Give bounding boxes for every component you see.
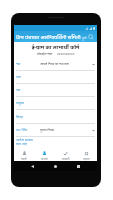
button[interactable]: जिल्हा: [14, 110, 97, 124]
staticText: नोंदणी: [21, 157, 27, 160]
staticText: गाव: [16, 88, 21, 92]
button[interactable]: Back: [28, 162, 37, 171]
button[interactable]: ग्राम पंचायत आरोग्यवर्धिनी समिती: [14, 31, 97, 42]
staticText: तुमचा निवडा: [40, 128, 55, 132]
staticText: ग्राम पंचायत आरोग्यवर्धिनी समिती: [16, 33, 81, 40]
button[interactable]: तपासणी: [55, 148, 76, 162]
staticText: तपासणी: [62, 157, 70, 160]
staticText: पत्ता: [16, 75, 21, 79]
button[interactable]: तालुका: [14, 97, 97, 110]
staticText: लाभार्थी: [41, 157, 48, 160]
button[interactable]: वय / लिंग: [14, 124, 97, 137]
staticText: तालुका: [16, 101, 25, 105]
staticText: आपले निवड का नाव करा: [40, 62, 69, 66]
button[interactable]: पत्ता: [14, 71, 97, 84]
button[interactable]: लाभार्थी: [34, 148, 55, 162]
staticText: xxxxxxxxxx: [57, 51, 75, 55]
button[interactable]: नोंदणी: [14, 148, 34, 162]
staticText: ई-ग्राम का लाभार्थी फॉर्म: [14, 43, 97, 50]
staticText: मोबाईल नंबर: [37, 51, 53, 55]
button[interactable]: Recent apps: [74, 162, 83, 171]
staticText: वय / लिंग: [16, 128, 28, 132]
button[interactable]: नाव: [14, 58, 97, 71]
button[interactable]: अहवाल: [76, 148, 97, 162]
staticText: आरोग्य समस्या काय आहे: [16, 138, 33, 146]
staticText: जिल्हा: [16, 115, 24, 119]
staticText: पुणे: [82, 35, 87, 40]
button[interactable]: गाव: [14, 84, 97, 97]
button[interactable]: Home: [51, 162, 60, 171]
button[interactable]: Search: [87, 33, 95, 41]
staticText: नाव: [16, 62, 21, 66]
staticText: अहवाल: [83, 157, 90, 160]
